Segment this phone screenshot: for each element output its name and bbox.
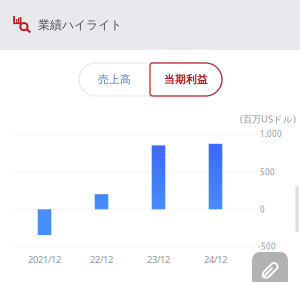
staticText: 当期利益 <box>164 73 208 86</box>
staticText: -500 <box>258 241 276 252</box>
button[interactable]: 当期利益 <box>150 63 222 96</box>
staticText: (百万USドル) <box>240 113 296 125</box>
staticText: 2021/12 <box>28 253 61 266</box>
staticText: 24/12 <box>204 253 227 266</box>
button[interactable]: Attachment <box>252 252 288 282</box>
staticText: 売上高 <box>98 73 131 86</box>
button[interactable]: 売上高 <box>79 63 150 96</box>
staticText: 業績ハイライト <box>38 18 122 32</box>
staticText: 500 <box>260 167 275 177</box>
staticText: 0 <box>260 204 265 215</box>
staticText: 1,000 <box>260 129 282 139</box>
staticText: 23/12 <box>147 253 170 266</box>
staticText: 22/12 <box>90 253 113 266</box>
